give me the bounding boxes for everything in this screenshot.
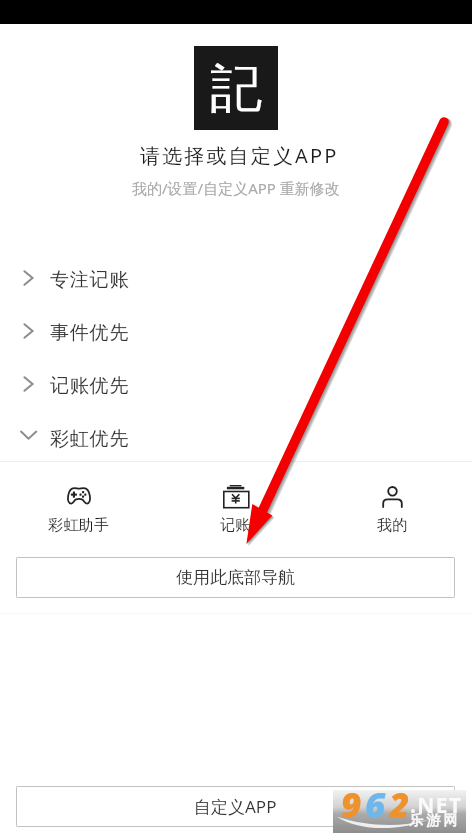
staticText: 自定义APP xyxy=(194,795,277,818)
staticText: 彩虹助手 xyxy=(48,516,109,535)
staticText: 6 xyxy=(365,781,389,824)
other: Profile xyxy=(382,486,403,508)
staticText: 我的/设置/自定义APP 重新修改 xyxy=(132,178,340,198)
button[interactable]: 使用此底部导航 xyxy=(16,557,455,598)
button[interactable]: Games xyxy=(0,484,157,539)
button[interactable]: Accounting xyxy=(157,484,314,539)
staticText: 9 xyxy=(341,781,365,824)
staticText: 记账 xyxy=(220,516,251,535)
staticText: 专注记账 xyxy=(50,268,130,292)
staticText: 乐游网 xyxy=(409,812,461,830)
staticText: 使用此底部导航 xyxy=(176,567,295,588)
staticText: 記 xyxy=(210,56,262,122)
button[interactable]: 事件优先 xyxy=(0,306,472,359)
staticText: 我的 xyxy=(377,516,408,535)
staticText: 请选择或自定义APP xyxy=(140,142,339,169)
other: Games xyxy=(67,487,91,506)
other: Accounting xyxy=(223,485,249,508)
staticText: 彩虹优先 xyxy=(50,427,130,451)
button[interactable]: 彩虹优先 xyxy=(0,412,472,465)
button[interactable]: Profile xyxy=(314,484,471,539)
staticText: .NET xyxy=(410,791,463,820)
button[interactable]: 记账优先 xyxy=(0,359,472,412)
button[interactable]: 自定义APP xyxy=(16,786,455,827)
staticText: 2 xyxy=(389,781,413,824)
staticText: 记账优先 xyxy=(50,374,130,398)
staticText: 事件优先 xyxy=(50,321,130,345)
button[interactable]: 专注记账 xyxy=(0,253,472,306)
